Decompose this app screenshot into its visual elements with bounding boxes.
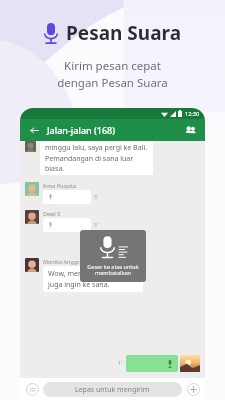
staticText: 5': [94, 222, 98, 229]
staticText: Jalan-jalan (168): [47, 124, 116, 136]
staticText: Pesan Suara: [66, 20, 182, 46]
staticText: Geser ke atas untuk membatalkan: [87, 263, 139, 277]
button[interactable]: Keyboard: [25, 382, 39, 396]
staticText: Monika Anggraini: [43, 258, 89, 265]
button[interactable]: Group members: [183, 123, 198, 138]
button[interactable]: Photo: [180, 355, 200, 372]
button[interactable]: Back: [27, 123, 41, 137]
button[interactable]: Add attachment: [186, 382, 200, 396]
staticText: 12:30: [185, 110, 200, 117]
staticText: minggu lalu, saya pergi ke Bali. Pemanda…: [45, 143, 148, 173]
button[interactable]: Play voice message: [43, 190, 91, 204]
staticText: Wow, menyenangkan! Saya juga ingin ke sa…: [48, 269, 138, 289]
staticText: Dewi S: [43, 210, 61, 217]
button[interactable]: Play voice message: [43, 218, 91, 232]
button[interactable]: Play voice message: [126, 355, 178, 372]
button[interactable]: Lepas untuk mengirim: [43, 382, 182, 397]
staticText: Irma Puspita: [43, 182, 77, 189]
staticText: Lepas untuk mengirim: [75, 385, 150, 395]
staticText: 5': [94, 194, 98, 201]
staticText: Kirim pesan cepat dengan Pesan Suara: [57, 58, 168, 91]
staticText: 1': [118, 360, 122, 367]
